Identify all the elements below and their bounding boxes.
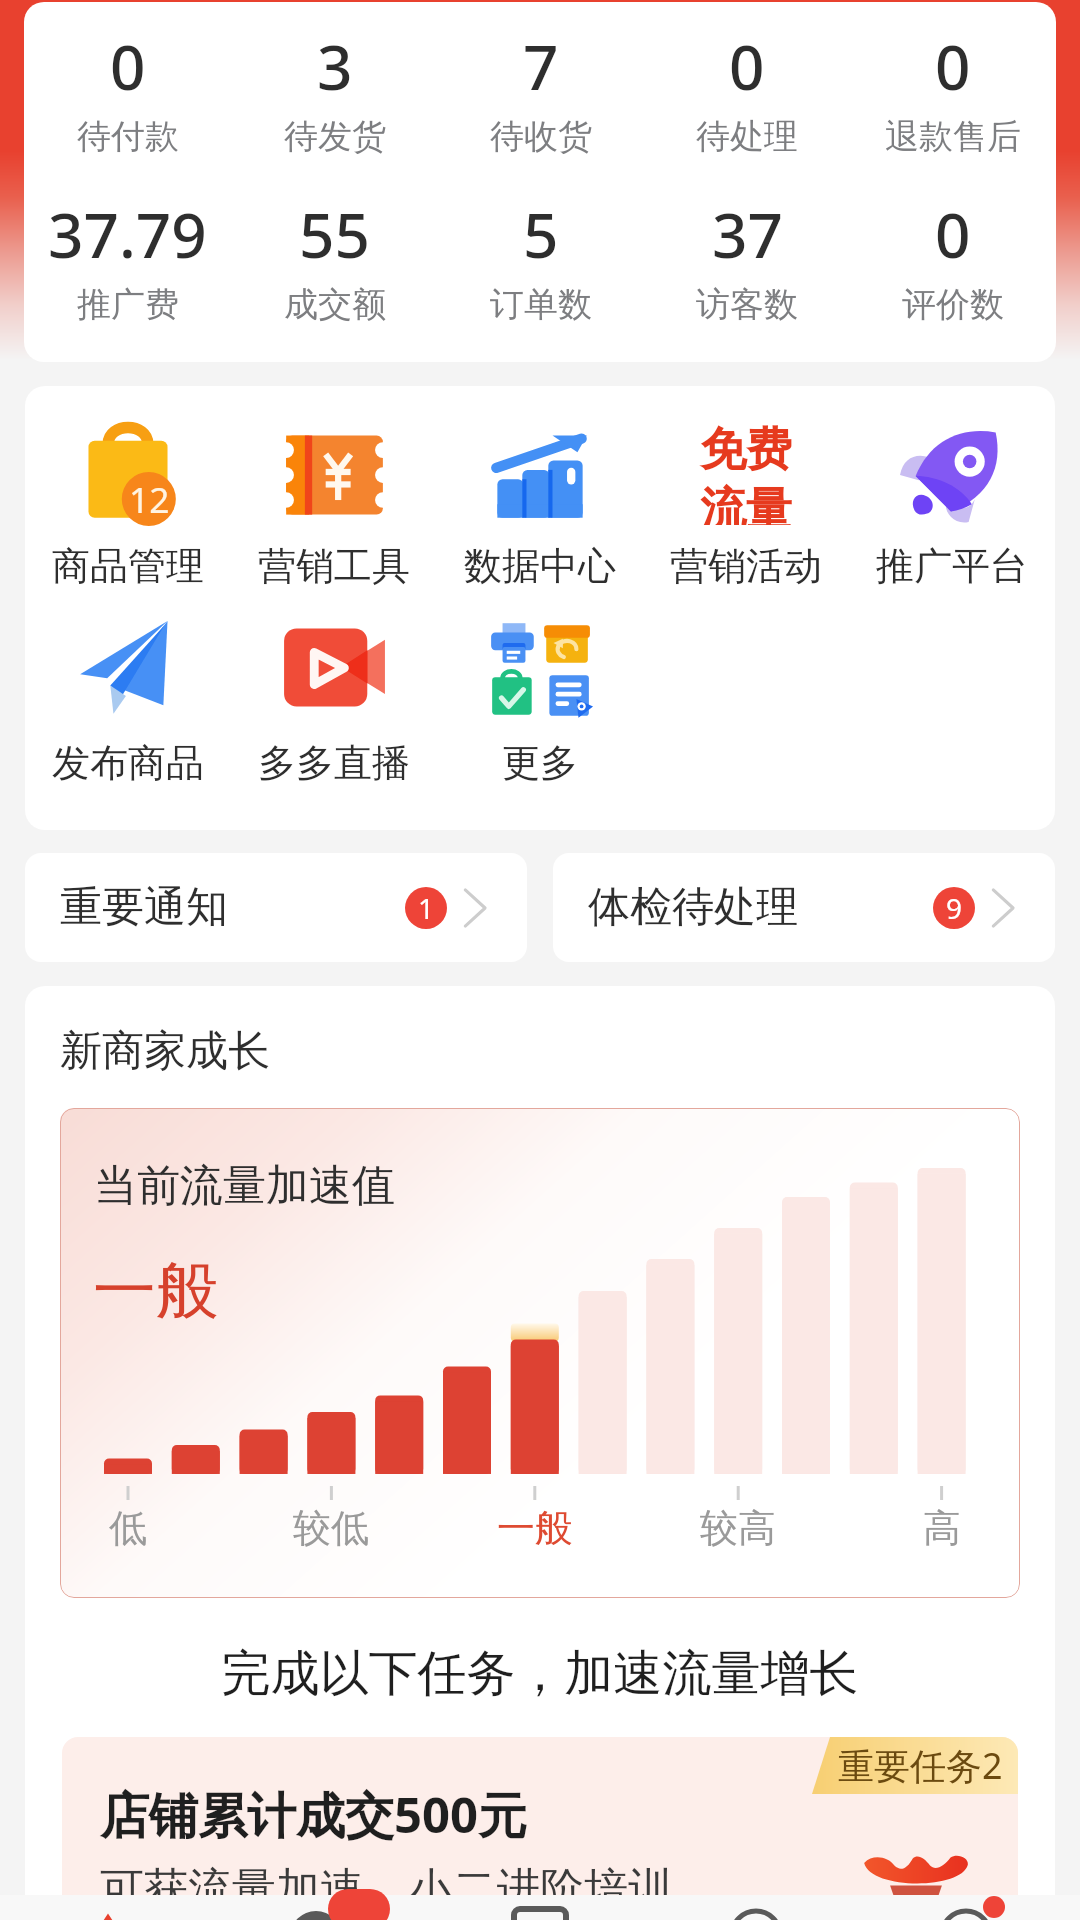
staticText: 当前流量加速值 — [94, 1159, 395, 1213]
staticText: 7 — [523, 24, 559, 108]
staticText: 待付款 — [77, 115, 179, 158]
staticText: 商品管理 — [52, 542, 204, 590]
button[interactable]: 0 — [850, 192, 1056, 326]
staticText: 数据中心 — [464, 542, 616, 590]
staticText: 营销活动 — [670, 542, 822, 590]
button[interactable]: 5 — [438, 192, 644, 326]
button[interactable]: 数据中心 — [437, 421, 643, 590]
button[interactable]: 12 — [25, 421, 231, 590]
staticText: 较低 — [293, 1504, 369, 1552]
button[interactable]: 消息 — [216, 1895, 432, 1920]
staticText: 新商家成长 — [60, 1025, 270, 1078]
staticText: 一般 — [93, 1251, 219, 1330]
staticText: 较高 — [700, 1504, 776, 1552]
staticText: 完成以下任务，加速流量增长 — [25, 1643, 1055, 1705]
button[interactable]: 7 — [438, 24, 644, 158]
staticText: 55 — [299, 192, 370, 276]
button[interactable]: 营销工具 — [231, 421, 437, 590]
staticText: 流量 — [700, 481, 792, 525]
staticText: 体检待处理 — [588, 881, 798, 934]
staticText: 重要任务2 — [838, 1741, 1003, 1790]
button[interactable]: 管理 — [648, 1895, 864, 1920]
staticText: 推广平台 — [876, 542, 1028, 590]
staticText: 0 — [729, 24, 765, 108]
staticText: 订单数 — [490, 283, 592, 326]
staticText: 1 — [418, 889, 435, 927]
button[interactable]: 0 — [644, 24, 850, 158]
button[interactable]: 订单 — [432, 1895, 648, 1920]
staticText: 待收货 — [490, 115, 592, 158]
staticText: 高 — [923, 1504, 961, 1552]
staticText: 营销工具 — [258, 542, 410, 590]
button[interactable]: 55 — [231, 192, 438, 326]
staticText: 37 — [712, 192, 783, 276]
staticText: 店铺累计成交500元 — [100, 1781, 528, 1848]
button[interactable]: 发布商品 — [25, 618, 231, 787]
staticText: 重要通知 — [60, 881, 228, 934]
staticText: 免费 — [700, 421, 792, 479]
button[interactable]: 3 — [231, 24, 438, 158]
staticText: 更多 — [502, 739, 578, 787]
button[interactable]: 我的 — [864, 1895, 1080, 1920]
button[interactable]: 推广平台 — [849, 421, 1055, 590]
staticText: 一般 — [497, 1504, 573, 1552]
button[interactable]: 37 — [644, 192, 850, 326]
staticText: 0 — [935, 24, 971, 108]
staticText: 评价数 — [902, 283, 1004, 326]
button[interactable]: 体检待处理 — [553, 853, 1055, 962]
button[interactable]: 0 — [850, 24, 1056, 158]
staticText: 访客数 — [696, 283, 798, 326]
button[interactable]: 重要通知 — [25, 853, 527, 962]
staticText: 退款售后 — [885, 115, 1021, 158]
staticText: 可获流量加速、小二进阶培训 — [100, 1862, 672, 1917]
staticText: 成交额 — [284, 283, 386, 326]
staticText: 12 — [129, 475, 170, 523]
staticText: 3 — [317, 24, 353, 108]
staticText: 待发货 — [284, 115, 386, 158]
staticText: 低 — [109, 1504, 147, 1552]
button[interactable]: 多多直播 — [231, 618, 437, 787]
button[interactable]: 更多 — [437, 618, 643, 787]
staticText: 待处理 — [696, 115, 798, 158]
button[interactable]: 首页 — [0, 1895, 216, 1920]
button[interactable]: 37.79 — [24, 192, 231, 326]
staticText: 37.79 — [48, 192, 207, 276]
staticText: 多多直播 — [258, 739, 410, 787]
staticText: 推广费 — [77, 283, 179, 326]
staticText: 9 — [946, 889, 963, 927]
button[interactable]: 0 — [24, 24, 231, 158]
button[interactable]: 免费 — [643, 421, 849, 590]
staticText: 0 — [110, 24, 146, 108]
button[interactable]: 店铺累计成交500元 — [62, 1737, 1018, 1920]
staticText: 发布商品 — [52, 739, 204, 787]
staticText: 5 — [523, 192, 559, 276]
staticText: 0 — [935, 192, 971, 276]
